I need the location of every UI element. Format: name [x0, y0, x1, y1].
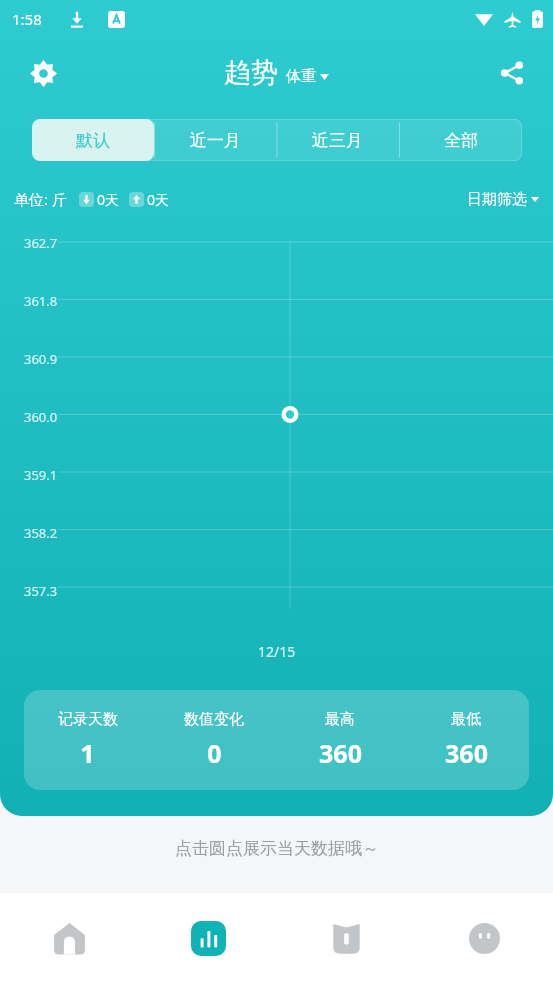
- staticText: 日期筛选: [467, 190, 527, 209]
- staticText: 默认: [76, 130, 110, 151]
- staticText: 近一月: [190, 130, 241, 151]
- button[interactable]: Home: [0, 893, 139, 983]
- button[interactable]: Diary: [277, 893, 415, 983]
- staticText: 0: [207, 736, 222, 770]
- staticText: 359.1: [24, 466, 58, 482]
- staticText: 数值变化: [184, 710, 244, 729]
- staticText: 近三月: [312, 130, 363, 151]
- button[interactable]: Settings: [20, 50, 66, 96]
- staticText: 记录天数: [58, 710, 118, 729]
- staticText: 单位: 斤: [14, 189, 67, 209]
- button[interactable]: 近一月: [154, 119, 276, 161]
- staticText: 全部: [444, 130, 478, 151]
- button[interactable]: 记录天数: [24, 690, 529, 790]
- button[interactable]: Profile: [415, 893, 553, 983]
- staticText: 1: [80, 736, 95, 770]
- staticText: 12/15: [258, 642, 296, 661]
- button[interactable]: 全部: [399, 119, 522, 161]
- button[interactable]: 近三月: [276, 119, 399, 161]
- button[interactable]: 日期筛选: [467, 190, 539, 209]
- staticText: 点击圆点展示当天数据哦～: [175, 838, 379, 859]
- staticText: 体重: [286, 67, 316, 86]
- staticText: 最高: [325, 710, 355, 729]
- staticText: 360.0: [24, 408, 58, 424]
- staticText: 1:58: [12, 9, 42, 29]
- staticText: 362.7: [24, 234, 58, 250]
- button[interactable]: 体重: [286, 67, 329, 86]
- staticText: 360: [445, 736, 488, 770]
- staticText: 360.9: [24, 350, 58, 366]
- staticText: 趋势: [224, 56, 278, 90]
- staticText: 361.8: [24, 292, 58, 308]
- staticText: 358.2: [24, 524, 58, 540]
- button[interactable]: 默认: [32, 119, 154, 161]
- staticText: 357.3: [24, 582, 58, 598]
- staticText: 360: [319, 736, 362, 770]
- button[interactable]: Share: [489, 50, 535, 96]
- staticText: 0天: [147, 190, 170, 209]
- staticText: 0天: [97, 190, 120, 209]
- button[interactable]: Trends: [139, 893, 277, 983]
- staticText: 最低: [451, 710, 481, 729]
